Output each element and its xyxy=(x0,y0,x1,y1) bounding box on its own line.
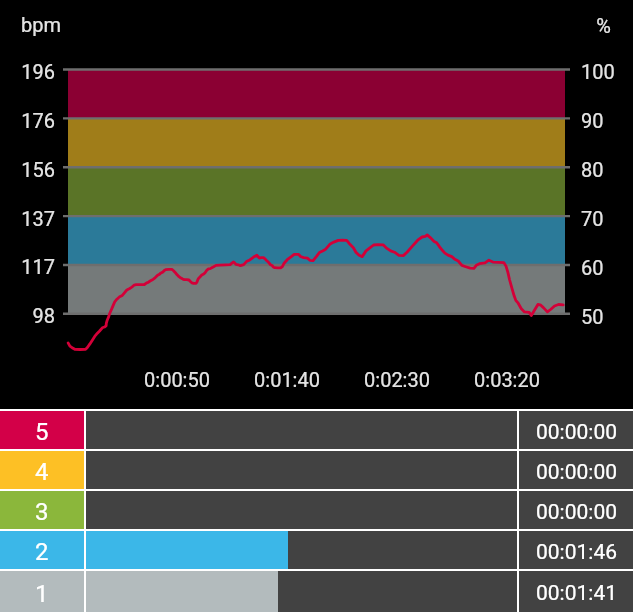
staticText: 137 xyxy=(2,207,55,230)
staticText: 00:01:46 xyxy=(536,540,617,565)
staticText: 70 xyxy=(581,207,604,230)
staticText: 90 xyxy=(581,109,604,132)
staticText: 00:00:00 xyxy=(536,460,617,485)
button[interactable]: 4 xyxy=(0,451,633,489)
staticText: 176 xyxy=(2,109,55,132)
staticText: 4 xyxy=(35,458,49,486)
staticText: 0:01:40 xyxy=(237,368,337,391)
button[interactable]: 1 xyxy=(0,571,633,612)
staticText: 0:03:20 xyxy=(457,368,557,391)
staticText: 00:01:41 xyxy=(536,581,617,606)
staticText: bpm xyxy=(21,13,61,36)
staticText: 50 xyxy=(581,305,604,328)
button[interactable]: 5 xyxy=(0,411,633,449)
button[interactable]: Heart rate chart xyxy=(0,0,633,409)
staticText: % xyxy=(565,14,611,37)
staticText: 196 xyxy=(2,60,55,83)
staticText: 98 xyxy=(2,304,55,327)
staticText: 100 xyxy=(581,60,615,83)
staticText: 2 xyxy=(35,538,49,566)
staticText: 60 xyxy=(581,256,604,279)
staticText: 80 xyxy=(581,158,604,181)
staticText: 00:00:00 xyxy=(536,420,617,445)
button[interactable]: 2 xyxy=(0,531,633,569)
staticText: 0:00:50 xyxy=(127,368,227,391)
staticText: 3 xyxy=(35,498,49,526)
button[interactable]: 3 xyxy=(0,491,633,529)
staticText: 00:00:00 xyxy=(536,500,617,525)
staticText: 5 xyxy=(35,418,49,446)
staticText: 117 xyxy=(2,255,55,278)
staticText: 0:02:30 xyxy=(347,368,447,391)
staticText: 156 xyxy=(2,158,55,181)
staticText: 1 xyxy=(35,580,49,608)
